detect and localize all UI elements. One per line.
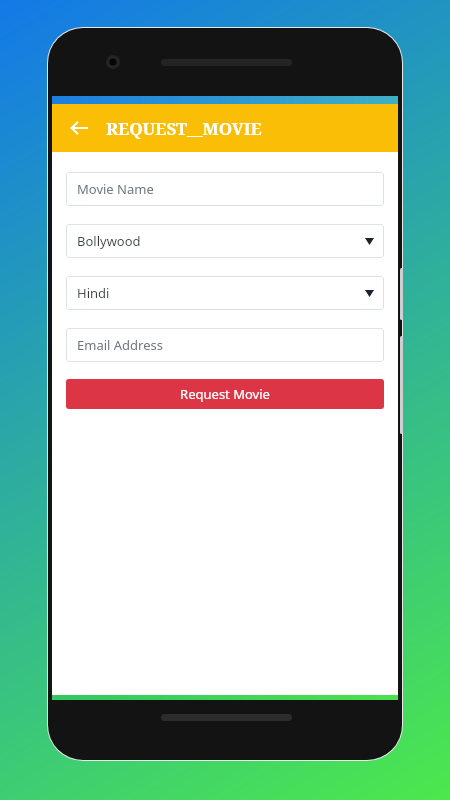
staticText: Bollywood [77, 232, 141, 250]
button[interactable]: Back [62, 111, 96, 145]
staticText: Hindi [77, 284, 110, 302]
button[interactable]: Bollywood [66, 224, 384, 258]
staticText: Email Address [77, 336, 163, 354]
staticText: Movie Name [77, 180, 154, 198]
staticText: REQUEST__MOVIE [106, 117, 262, 140]
button[interactable]: Email Address [66, 328, 384, 362]
button[interactable]: Request Movie [66, 379, 384, 409]
button[interactable]: Movie Name [66, 172, 384, 206]
button[interactable]: Hindi [66, 276, 384, 310]
staticText: Request Movie [180, 385, 270, 403]
